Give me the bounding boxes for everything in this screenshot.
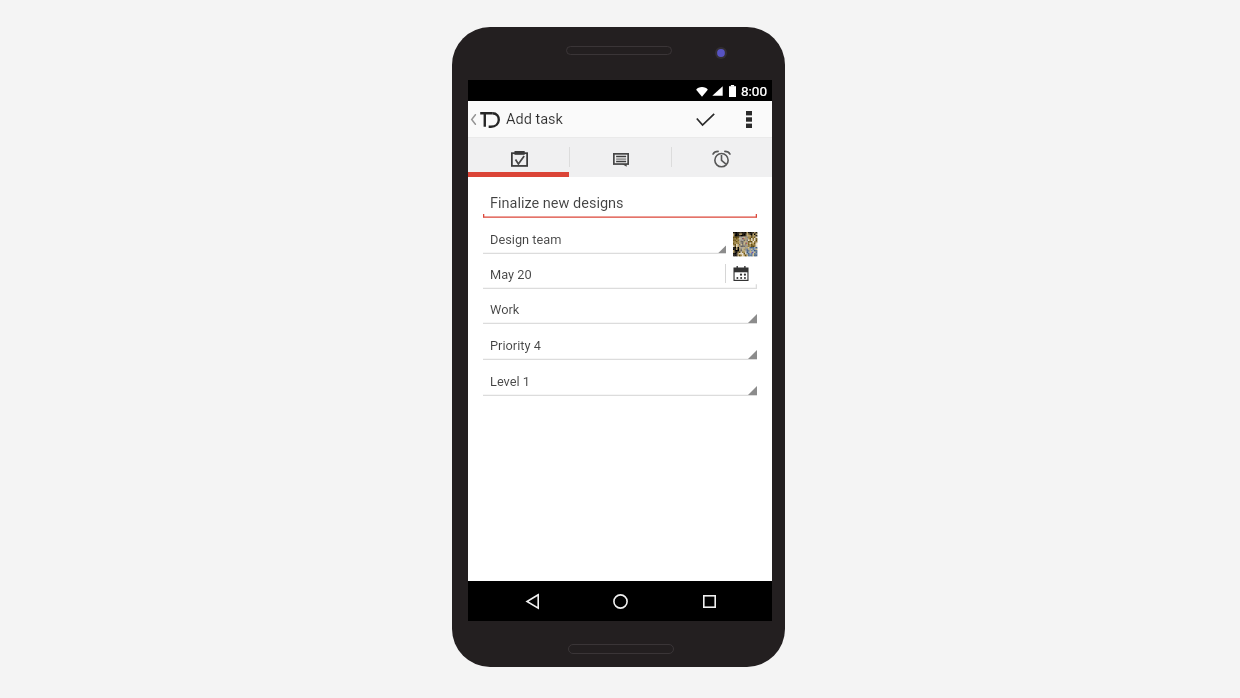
button[interactable]: Back: [510, 581, 554, 621]
button[interactable]: Priority 4: [483, 335, 757, 360]
staticText: Priority 4: [490, 338, 541, 353]
button[interactable]: Design team: [483, 229, 726, 254]
button[interactable]: Assignee avatar: [733, 232, 757, 256]
button[interactable]: Work: [483, 299, 757, 324]
staticText: Work: [490, 302, 520, 317]
button[interactable]: May 20: [483, 264, 757, 289]
button[interactable]: Recents: [687, 581, 731, 621]
button[interactable]: Level 1: [483, 371, 757, 396]
button[interactable]: More options: [734, 101, 764, 138]
staticText: Level 1: [490, 374, 530, 389]
button[interactable]: Task details: [468, 138, 570, 177]
staticText: Add task: [506, 111, 563, 128]
button[interactable]: Home: [598, 581, 642, 621]
staticText: May 20: [490, 267, 532, 282]
button[interactable]: Reminders: [671, 138, 772, 177]
button[interactable]: Finalize new designs: [483, 193, 757, 218]
button[interactable]: Save task: [686, 101, 724, 138]
staticText: Design team: [490, 232, 562, 247]
button[interactable]: Navigate up: [468, 101, 573, 138]
button[interactable]: Comments: [570, 138, 671, 177]
staticText: Finalize new designs: [490, 195, 624, 212]
button[interactable]: Pick date: [733, 266, 749, 281]
staticText: 8:00: [741, 83, 768, 99]
